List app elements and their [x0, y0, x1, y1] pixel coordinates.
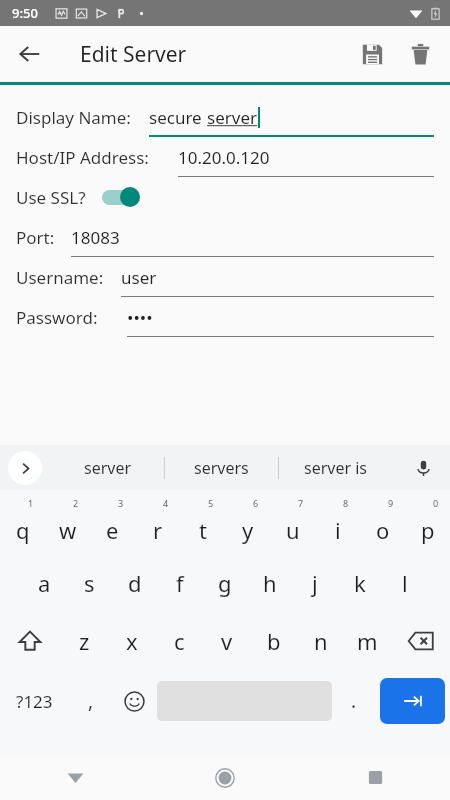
staticText: Port: — [16, 226, 55, 249]
button[interactable]: . — [332, 670, 375, 732]
button[interactable]: 2 — [45, 496, 90, 554]
staticText: b — [267, 626, 281, 656]
button[interactable]: c — [156, 612, 203, 670]
staticText: 8 — [343, 497, 349, 509]
button[interactable]: Back — [0, 755, 150, 800]
staticText: 18083 — [71, 226, 120, 249]
staticText: w — [59, 515, 77, 545]
staticText: 5 — [208, 497, 214, 509]
button[interactable]: m — [344, 612, 391, 670]
staticText: Use SSL? — [16, 186, 86, 209]
button[interactable]: Enter — [380, 678, 445, 724]
staticText: y — [242, 515, 254, 545]
button[interactable]: s — [67, 554, 112, 612]
button[interactable]: l — [382, 554, 427, 612]
button[interactable]: Shift — [0, 612, 60, 670]
button[interactable]: k — [337, 554, 382, 612]
button[interactable]: ?123 — [0, 670, 69, 732]
button[interactable]: 8 — [315, 496, 360, 554]
staticText: r — [153, 515, 163, 545]
staticText: •••• — [127, 306, 153, 329]
button[interactable]: , — [69, 670, 112, 732]
staticText: 1 — [28, 497, 34, 509]
staticText: server is — [304, 457, 368, 479]
button[interactable]: 4 — [135, 496, 180, 554]
staticText: Display Name: — [16, 106, 131, 129]
staticText: ?123 — [16, 690, 53, 713]
staticText: s — [84, 568, 95, 598]
staticText: server — [84, 457, 132, 479]
button[interactable]: 6 — [225, 496, 270, 554]
button[interactable]: Use SSL? — [0, 177, 450, 217]
button[interactable]: Save — [348, 30, 396, 78]
staticText: c — [174, 626, 185, 656]
staticText: , — [88, 688, 94, 714]
staticText: g — [218, 568, 232, 598]
button[interactable]: Back — [8, 32, 52, 76]
staticText: Host/IP Address: — [16, 146, 149, 169]
button[interactable]: server — [52, 445, 164, 490]
button[interactable]: More suggestions — [8, 451, 42, 485]
staticText: Edit Server — [80, 40, 187, 69]
button[interactable]: Recent apps — [300, 755, 450, 800]
button[interactable]: f — [157, 554, 202, 612]
button[interactable]: 3 — [90, 496, 135, 554]
staticText: user — [121, 266, 157, 289]
staticText: i — [335, 515, 341, 545]
button[interactable]: Username: — [0, 257, 450, 297]
button[interactable]: server is — [279, 445, 392, 490]
button[interactable]: g — [202, 554, 247, 612]
button[interactable]: 9 — [360, 496, 405, 554]
button[interactable]: b — [250, 612, 297, 670]
staticText: 3 — [118, 497, 124, 509]
button[interactable]: a — [22, 554, 67, 612]
staticText: secure — [149, 106, 207, 129]
staticText: 9:50 — [12, 4, 38, 22]
staticText: 6 — [253, 497, 259, 509]
button[interactable]: Port: — [0, 217, 450, 257]
staticText: servers — [194, 457, 249, 479]
button[interactable]: Backspace — [391, 612, 450, 670]
staticText: d — [128, 568, 142, 598]
button[interactable]: x — [108, 612, 156, 670]
staticText: 9 — [388, 497, 394, 509]
staticText: server — [207, 106, 257, 129]
staticText: h — [263, 568, 277, 598]
button[interactable]: d — [112, 554, 157, 612]
staticText: x — [126, 626, 138, 656]
staticText: 4 — [163, 497, 169, 509]
button[interactable]: h — [247, 554, 292, 612]
staticText: 0 — [433, 497, 439, 509]
staticText: Username: — [16, 266, 104, 289]
staticText: k — [354, 568, 366, 598]
button[interactable]: Delete — [396, 30, 444, 78]
staticText: a — [38, 568, 51, 598]
staticText: f — [176, 568, 184, 598]
button[interactable]: j — [292, 554, 337, 612]
staticText: n — [314, 626, 328, 656]
staticText: l — [402, 568, 408, 598]
button[interactable]: v — [203, 612, 250, 670]
button[interactable]: Home — [150, 755, 300, 800]
staticText: 2 — [73, 497, 79, 509]
button[interactable]: Password: — [0, 297, 450, 337]
staticText: u — [286, 515, 300, 545]
button[interactable]: servers — [165, 445, 278, 490]
staticText: v — [221, 626, 233, 656]
staticText: m — [357, 626, 378, 656]
button[interactable]: 1 — [0, 496, 45, 554]
button[interactable]: Display Name: — [0, 97, 450, 137]
button[interactable]: 5 — [180, 496, 225, 554]
button[interactable]: Voice input — [406, 451, 440, 485]
staticText: 7 — [298, 497, 304, 509]
button[interactable]: 7 — [270, 496, 315, 554]
button[interactable]: Host/IP Address: — [0, 137, 450, 177]
staticText: p — [421, 515, 435, 545]
staticText: t — [199, 515, 207, 545]
button[interactable]: n — [297, 612, 344, 670]
button[interactable]: z — [60, 612, 108, 670]
button[interactable]: Emoji — [112, 670, 157, 732]
button[interactable]: 0 — [405, 496, 450, 554]
staticText: Password: — [16, 306, 98, 329]
